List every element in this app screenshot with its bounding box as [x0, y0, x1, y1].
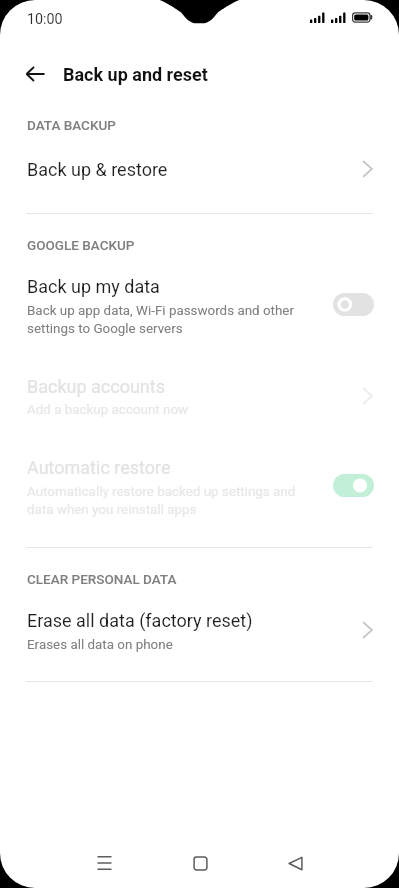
staticText: Back up app data, Wi-Fi passwords and ot…	[27, 303, 317, 337]
staticText: GOOGLE BACKUP	[27, 237, 135, 253]
button[interactable]: Back	[267, 837, 323, 888]
staticText: DATA BACKUP	[27, 117, 116, 133]
button[interactable]: On	[333, 474, 374, 497]
staticText: 10:00	[27, 11, 63, 28]
staticText: Erase all data (factory reset)	[27, 610, 253, 631]
button[interactable]: Navigate up	[13, 52, 57, 96]
button[interactable]	[0, 264, 399, 345]
staticText: Back up and reset	[63, 64, 208, 85]
staticText: Back up my data	[27, 276, 160, 297]
staticText: Back up & restore	[27, 159, 168, 180]
button[interactable]	[0, 146, 399, 198]
staticText: CLEAR PERSONAL DATA	[27, 571, 177, 587]
button[interactable]: Off	[333, 293, 374, 316]
button[interactable]	[0, 364, 399, 425]
button[interactable]	[0, 445, 399, 526]
staticText: Add a backup account now	[27, 402, 317, 418]
staticText: Backup accounts	[27, 376, 165, 397]
staticText: Erases all data on phone	[27, 637, 317, 653]
button[interactable]: Home	[172, 837, 228, 888]
button[interactable]	[0, 598, 399, 660]
staticText: Automatic restore	[27, 457, 171, 478]
staticText: Automatically restore backed up settings…	[27, 484, 317, 518]
button[interactable]: Recent apps	[76, 837, 132, 888]
